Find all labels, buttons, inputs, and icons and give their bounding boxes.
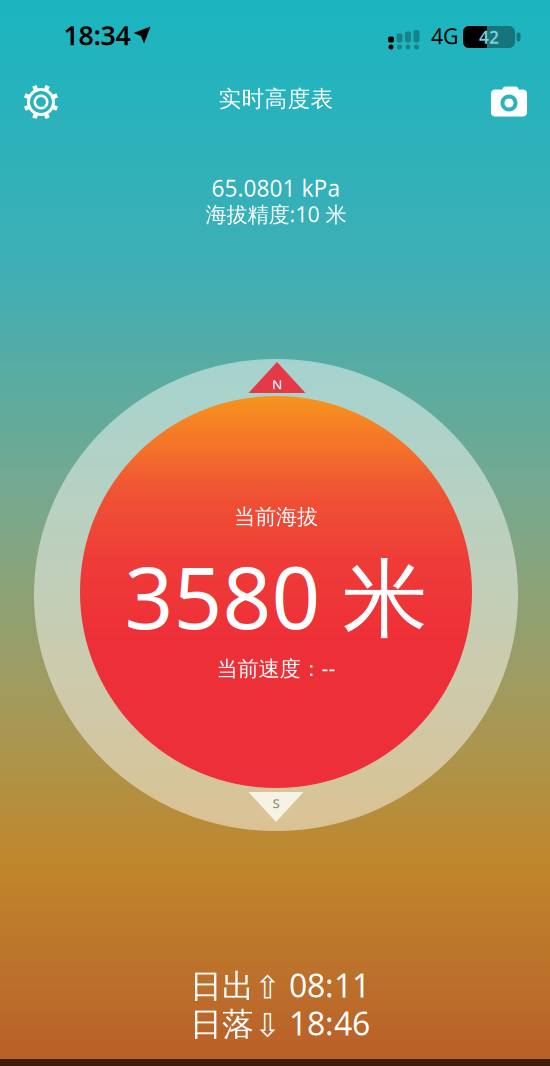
staticText: S <box>272 794 279 812</box>
staticText: 18:34 <box>63 17 130 53</box>
staticText: 42 <box>479 25 499 48</box>
staticText: 3580 米 <box>124 539 427 653</box>
staticText: 4G <box>431 22 459 50</box>
staticText: N <box>272 375 282 393</box>
staticText: 实时高度表 <box>218 85 333 113</box>
button[interactable]: Settings <box>21 82 61 122</box>
button[interactable]: Camera <box>491 85 527 116</box>
staticText: 当前海拔 <box>234 504 318 530</box>
staticText: 日落⇩ 18:46 <box>190 1002 370 1044</box>
staticText: 当前速度：-- <box>216 654 335 682</box>
staticText: 海拔精度:10 米 <box>205 200 346 228</box>
staticText: 日出⇧ 08:11 <box>190 964 370 1006</box>
staticText: 65.0801 kPa <box>211 173 340 203</box>
